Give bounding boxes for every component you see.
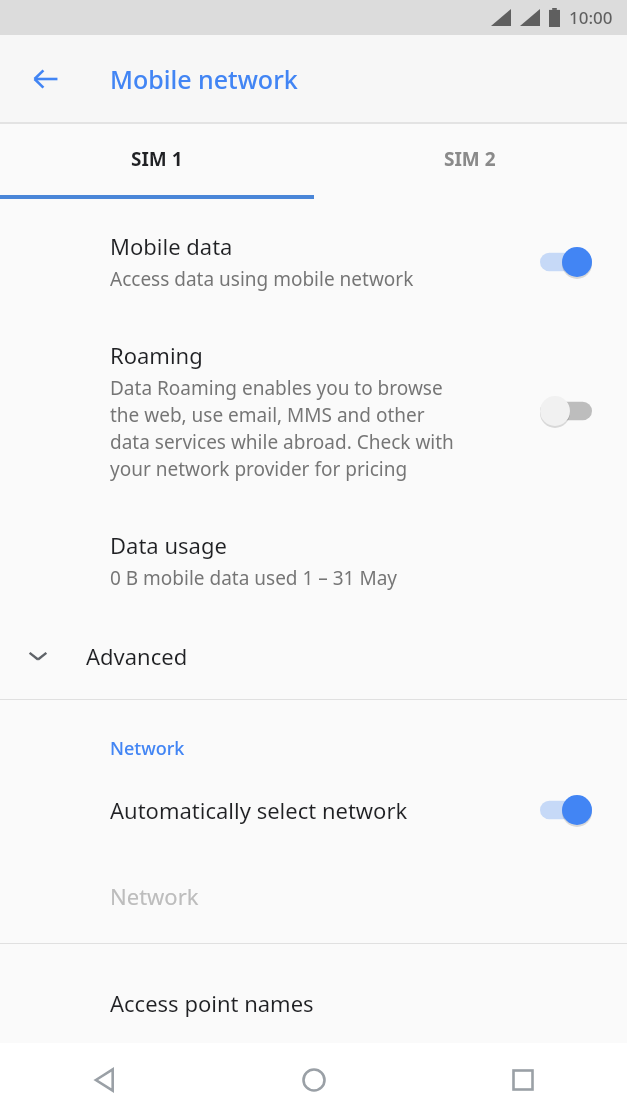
button[interactable]: Advanced xyxy=(0,613,627,699)
button[interactable]: Automatically select network xyxy=(0,761,627,855)
staticText: Roaming xyxy=(110,340,203,370)
button[interactable]: Back xyxy=(0,1043,209,1116)
button[interactable]: Back xyxy=(22,55,70,103)
staticText: Mobile network xyxy=(110,62,298,96)
button[interactable]: Roaming xyxy=(0,316,627,506)
button[interactable]: Mobile data xyxy=(0,209,627,316)
staticText: Data Roaming enables you to browse the w… xyxy=(110,375,466,482)
staticText: 0 B mobile data used 1 – 31 May xyxy=(110,565,397,591)
staticText: 10:00 xyxy=(569,6,613,29)
staticText: Advanced xyxy=(86,641,188,671)
button[interactable]: Data usage xyxy=(0,506,627,613)
button[interactable]: On xyxy=(540,795,592,825)
button[interactable]: Off xyxy=(540,396,592,426)
button[interactable]: SIM 2 xyxy=(313,124,627,209)
button[interactable]: Home xyxy=(209,1043,418,1116)
staticText: Network xyxy=(110,736,185,761)
staticText: Access data using mobile network xyxy=(110,266,524,292)
staticText: SIM 1 xyxy=(131,146,183,172)
button[interactable]: Recent apps xyxy=(418,1043,627,1116)
button[interactable]: Access point names xyxy=(0,944,627,1018)
staticText: Data usage xyxy=(110,530,227,560)
staticText: SIM 2 xyxy=(444,146,496,172)
button[interactable]: SIM 1 xyxy=(0,124,313,209)
button[interactable]: On xyxy=(540,247,592,277)
staticText: Automatically select network xyxy=(110,795,540,825)
staticText: Mobile data xyxy=(110,231,233,261)
button[interactable]: Network xyxy=(0,855,627,943)
